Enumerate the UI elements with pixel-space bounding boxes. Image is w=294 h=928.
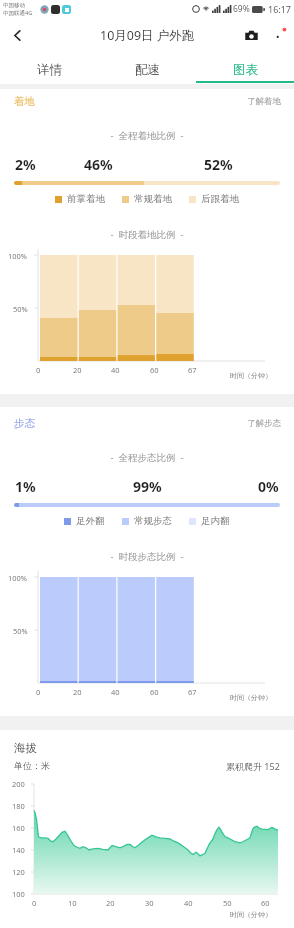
staticText: 常规着地 bbox=[134, 193, 172, 205]
staticText: 69% bbox=[233, 3, 250, 15]
staticText: 20 bbox=[73, 365, 82, 375]
staticText: 99% bbox=[133, 477, 162, 495]
staticText: - 时段步态比例 - bbox=[0, 550, 294, 563]
staticText: 10 bbox=[68, 898, 77, 908]
staticText: 67 bbox=[188, 365, 197, 375]
staticText: - 时段着地比例 - bbox=[0, 228, 294, 241]
staticText: 配速 bbox=[135, 62, 160, 78]
staticText: 40 bbox=[111, 365, 120, 375]
staticText: 67 bbox=[188, 687, 197, 697]
staticText: 50% bbox=[13, 304, 28, 314]
staticText: 20 bbox=[73, 687, 82, 697]
staticText: 20 bbox=[106, 898, 115, 908]
staticText: 海拔 bbox=[14, 741, 37, 755]
staticText: 图表 bbox=[233, 62, 258, 78]
staticText: 46% bbox=[84, 155, 113, 173]
staticText: 180 bbox=[12, 801, 25, 811]
staticText: 100% bbox=[8, 573, 28, 583]
button[interactable]: More options bbox=[266, 22, 292, 48]
staticText: 累积爬升 152 bbox=[226, 760, 280, 772]
staticText: 前掌着地 bbox=[67, 193, 105, 205]
staticText: 100 bbox=[12, 889, 25, 899]
staticText: 40 bbox=[184, 898, 193, 908]
staticText: 中国联通4G bbox=[3, 9, 33, 17]
staticText: 60 bbox=[150, 687, 159, 697]
staticText: 30 bbox=[145, 898, 154, 908]
button[interactable]: Back bbox=[0, 18, 34, 52]
button[interactable]: 了解着地 bbox=[247, 96, 281, 107]
staticText: 0 bbox=[36, 687, 41, 697]
staticText: 40 bbox=[111, 687, 120, 697]
staticText: 着地 bbox=[14, 95, 35, 108]
staticText: 单位：米 bbox=[14, 760, 50, 771]
staticText: 0 bbox=[32, 898, 37, 908]
staticText: 50% bbox=[13, 626, 28, 636]
staticText: 50 bbox=[223, 898, 232, 908]
staticText: 2% bbox=[15, 155, 36, 173]
staticText: 详情 bbox=[37, 62, 62, 78]
staticText: 足外翻 bbox=[76, 515, 105, 527]
staticText: 后跟着地 bbox=[201, 193, 239, 205]
staticText: 了解步态 bbox=[247, 418, 281, 429]
staticText: 1% bbox=[15, 477, 36, 495]
staticText: 0 bbox=[36, 365, 41, 375]
staticText: 时间（分钟） bbox=[230, 910, 272, 919]
staticText: 步态 bbox=[14, 417, 35, 430]
button[interactable]: 配速 bbox=[98, 52, 196, 84]
staticText: 足内翻 bbox=[201, 515, 230, 527]
staticText: 10月09日 户外跑 bbox=[100, 27, 195, 44]
staticText: 中国移动 bbox=[3, 2, 25, 9]
staticText: 0% bbox=[258, 477, 279, 495]
button[interactable]: Camera bbox=[236, 20, 266, 50]
button[interactable]: 了解步态 bbox=[247, 418, 281, 429]
staticText: 时间（分钟） bbox=[230, 371, 272, 380]
staticText: 60 bbox=[150, 365, 159, 375]
staticText: 100% bbox=[8, 251, 28, 261]
staticText: - 全程步态比例 - bbox=[0, 451, 294, 464]
staticText: 了解着地 bbox=[247, 96, 281, 107]
staticText: - 全程着地比例 - bbox=[0, 129, 294, 142]
staticText: 120 bbox=[12, 867, 25, 877]
button[interactable]: 详情 bbox=[0, 52, 98, 84]
staticText: 200 bbox=[12, 779, 25, 789]
staticText: 时间（分钟） bbox=[230, 693, 272, 702]
button[interactable]: 图表 bbox=[196, 52, 294, 84]
staticText: 常规步态 bbox=[134, 515, 172, 527]
staticText: 16:17 bbox=[268, 3, 292, 15]
staticText: 140 bbox=[12, 845, 25, 855]
staticText: 60 bbox=[261, 898, 270, 908]
staticText: 52% bbox=[204, 155, 233, 173]
staticText: 160 bbox=[12, 823, 25, 833]
